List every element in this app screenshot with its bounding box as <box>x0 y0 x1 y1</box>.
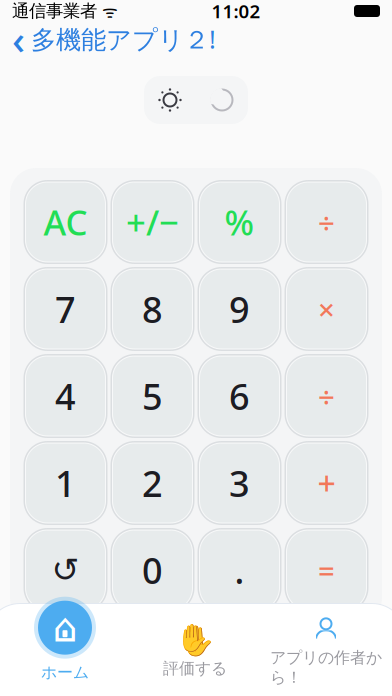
staticText: 5 <box>142 372 163 420</box>
staticText: 6 <box>229 372 250 420</box>
button[interactable]: 6 <box>199 356 279 436</box>
staticText: ⌂ <box>52 605 77 650</box>
button[interactable]: ÷ <box>286 356 366 436</box>
button[interactable]: +/− <box>112 182 192 262</box>
button[interactable]: % <box>199 182 279 262</box>
button[interactable]: = <box>286 530 366 610</box>
staticText: アプリの作者から！ <box>270 648 382 687</box>
button[interactable]: ÷ <box>286 182 366 262</box>
staticText: 1 <box>55 459 76 507</box>
staticText: ↺ <box>51 551 79 589</box>
button[interactable]: 0 <box>112 530 192 610</box>
staticText: 0 <box>142 546 163 594</box>
staticText: ホーム <box>41 663 89 682</box>
staticText: ✋ <box>178 624 215 657</box>
staticText: 7 <box>55 285 76 333</box>
staticText: = <box>318 550 335 589</box>
button[interactable]: Light mode <box>144 76 196 124</box>
staticText: 9 <box>229 285 250 333</box>
staticText: +/− <box>126 199 179 245</box>
staticText: AC <box>43 199 87 245</box>
staticText: × <box>318 289 335 328</box>
button[interactable]: Dark mode <box>196 76 248 124</box>
staticText: ‹ <box>12 12 25 65</box>
staticText: 2 <box>142 459 163 507</box>
staticText: 4 <box>55 372 76 420</box>
button[interactable]: ⌂ <box>0 597 130 693</box>
staticText: 通信事業者 <box>12 0 97 22</box>
button[interactable]: . <box>199 530 279 610</box>
button[interactable]: × <box>286 269 366 349</box>
button[interactable]: ✋ <box>130 597 260 693</box>
button[interactable]: + <box>286 443 366 523</box>
staticText: ✋ <box>175 622 208 653</box>
staticText: ᯤ <box>102 0 118 22</box>
button[interactable]: 7 <box>25 269 105 349</box>
staticText: 多機能アプリ２! <box>31 22 216 56</box>
staticText: ÷ <box>318 202 335 241</box>
button[interactable]: AC <box>25 182 105 262</box>
button[interactable]: 9 <box>199 269 279 349</box>
staticText: 11:02 <box>211 0 260 23</box>
staticText: . <box>234 546 244 594</box>
staticText: 評価する <box>163 659 227 678</box>
button[interactable]: ‹ <box>0 22 228 56</box>
button[interactable]: 3 <box>199 443 279 523</box>
staticText: 3 <box>229 459 250 507</box>
button[interactable]: 4 <box>25 356 105 436</box>
button[interactable]: ↺ <box>25 530 105 610</box>
button[interactable]: アプリの作者から！ <box>260 597 392 693</box>
button[interactable]: 8 <box>112 269 192 349</box>
button[interactable]: 2 <box>112 443 192 523</box>
staticText: + <box>317 462 335 504</box>
button[interactable]: 5 <box>112 356 192 436</box>
staticText: ÷ <box>318 376 335 415</box>
staticText: 8 <box>142 285 163 333</box>
button[interactable]: 1 <box>25 443 105 523</box>
staticText: % <box>224 199 254 245</box>
